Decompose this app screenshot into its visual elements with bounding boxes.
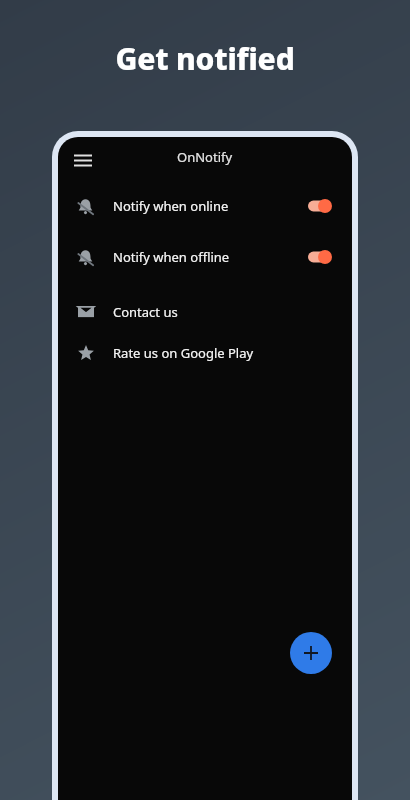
- button[interactable]: Notify when offline: [58, 238, 352, 276]
- staticText: Notify when online: [113, 197, 229, 215]
- button[interactable]: Notify when online: [58, 187, 352, 225]
- staticText: Get notified: [115, 38, 295, 79]
- staticText: Rate us on Google Play: [113, 344, 254, 362]
- button[interactable]: Open navigation menu: [68, 145, 98, 175]
- staticText: OnNotify: [177, 148, 233, 166]
- button[interactable]: Add: [290, 632, 332, 674]
- button[interactable]: Rate us on Google Play: [58, 337, 352, 368]
- button[interactable]: Contact us: [58, 296, 352, 327]
- staticText: Contact us: [113, 303, 178, 321]
- staticText: Notify when offline: [113, 248, 230, 266]
